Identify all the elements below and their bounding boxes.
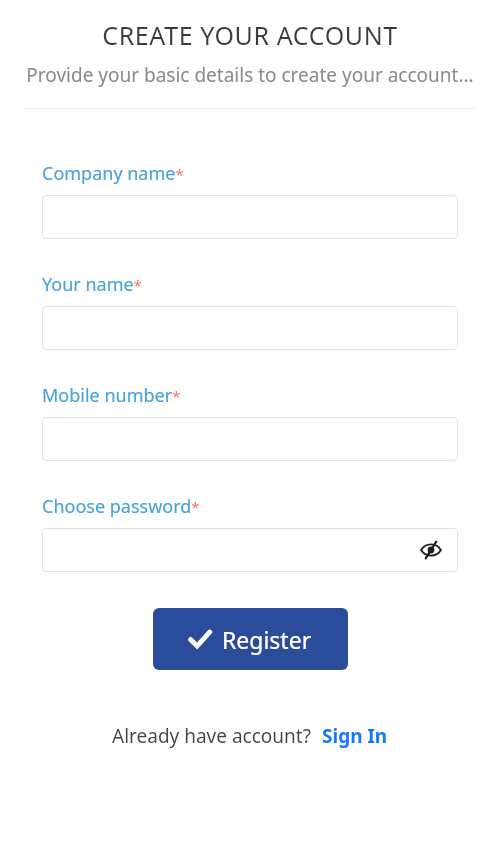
button[interactable] (42, 306, 458, 350)
staticText: Already have account? (112, 723, 311, 749)
staticText: Provide your basic details to create you… (26, 62, 474, 88)
button[interactable]: Sign In (322, 723, 388, 749)
button[interactable]: Show password (418, 537, 444, 563)
staticText: Choose password* (42, 494, 200, 519)
button[interactable]: Register (153, 608, 348, 670)
staticText: Mobile number* (42, 383, 181, 408)
button[interactable] (42, 417, 458, 461)
staticText: Register (222, 624, 312, 655)
staticText: Company name* (42, 161, 184, 186)
button[interactable] (42, 195, 458, 239)
staticText: Sign In (322, 723, 388, 749)
staticText: Your name* (42, 272, 142, 297)
staticText: CREATE YOUR ACCOUNT (0, 18, 500, 52)
button[interactable]: Show password (42, 528, 458, 572)
